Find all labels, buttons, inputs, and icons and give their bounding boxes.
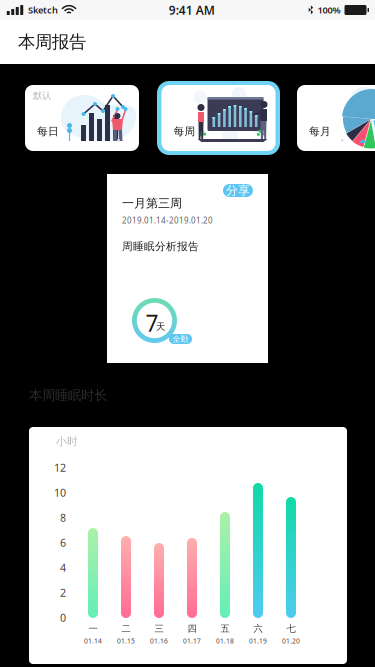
button[interactable]: 默认 <box>25 85 139 151</box>
staticText: 2 <box>60 585 66 600</box>
staticText: 6 <box>60 535 66 550</box>
staticText: Sketch <box>28 4 58 16</box>
button[interactable]: 分享 <box>223 184 253 197</box>
staticText: 01.17 <box>183 636 201 645</box>
staticText: 天 <box>156 321 165 332</box>
staticText: 7 <box>145 308 158 338</box>
staticText: 100% <box>317 4 340 16</box>
staticText: 9:41 AM <box>169 2 215 18</box>
button[interactable]: 每周 <box>157 81 280 155</box>
staticText: 每周 <box>173 125 195 138</box>
staticText: 本周睡眠时长 <box>29 387 107 403</box>
staticText: 一月第三周 <box>122 196 182 211</box>
staticText: 分享 <box>226 183 250 198</box>
staticText: 四 <box>187 623 196 634</box>
staticText: 01.19 <box>249 636 267 645</box>
staticText: 每月 <box>309 125 331 138</box>
staticText: 01.16 <box>150 636 168 645</box>
staticText: 本周报告 <box>18 31 86 53</box>
staticText: 10 <box>54 485 66 500</box>
staticText: 五 <box>220 623 229 634</box>
staticText: 默认 <box>33 90 51 101</box>
staticText: 一 <box>88 623 97 634</box>
staticText: 01.14 <box>84 636 102 645</box>
staticText: 0 <box>60 610 66 625</box>
staticText: 全勤 <box>172 334 188 344</box>
staticText: 二 <box>121 623 130 634</box>
staticText: 8 <box>60 510 66 525</box>
staticText: 周睡眠分析报告 <box>122 240 199 253</box>
staticText: 01.20 <box>282 636 300 645</box>
staticText: 每日 <box>37 125 59 138</box>
staticText: 01.15 <box>117 636 135 645</box>
staticText: 12 <box>54 460 66 475</box>
staticText: 六 <box>253 623 262 634</box>
staticText: 七 <box>286 623 295 634</box>
staticText: 三 <box>154 623 163 634</box>
staticText: 4 <box>60 560 66 575</box>
staticText: 2019.01.14-2019.01.20 <box>122 215 213 226</box>
staticText: 01.18 <box>216 636 234 645</box>
button[interactable] <box>297 85 375 151</box>
staticText: 小时 <box>56 435 78 448</box>
